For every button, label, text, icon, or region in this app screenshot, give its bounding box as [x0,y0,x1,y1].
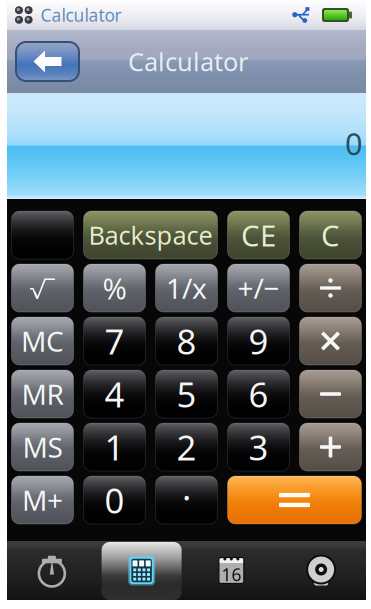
staticText: 0 [345,123,363,164]
button[interactable]: 2 [155,423,217,471]
staticText: 8 [176,318,196,364]
button[interactable]: Multiply [299,317,361,365]
button[interactable]: Equals [227,476,361,524]
button[interactable]: 6 [227,370,289,418]
button[interactable]: MS [11,423,73,471]
button[interactable]: Calendar [186,541,276,600]
staticText: M+ [22,481,63,519]
staticText: Backspace [88,218,212,252]
button[interactable]: Calculator [97,541,187,600]
button[interactable]: Plus [299,423,361,471]
button[interactable]: · [155,476,217,524]
button[interactable]: Camera [276,541,366,600]
button[interactable]: 1/x [155,264,217,312]
staticText: 5 [176,371,196,417]
staticText: +/− [237,269,279,307]
button[interactable]: C [299,211,361,259]
button[interactable]: M+ [11,476,73,524]
button[interactable]: % [83,264,145,312]
button[interactable] [11,211,73,259]
button[interactable]: 7 [83,317,145,365]
button[interactable]: Back [16,42,79,81]
button[interactable]: Start [11,2,37,28]
button[interactable]: CE [227,211,289,259]
staticText: 1 [104,424,124,470]
button[interactable]: 9 [227,317,289,365]
staticText: MC [21,322,64,360]
staticText: 16 [221,563,241,586]
button[interactable]: 4 [83,370,145,418]
button[interactable]: 8 [155,317,217,365]
button[interactable]: MR [11,370,73,418]
staticText: MS [22,428,62,466]
staticText: 7 [104,318,124,364]
staticText: 6 [248,371,268,417]
button[interactable]: +/− [227,264,289,312]
button[interactable]: Square root [11,264,73,312]
button[interactable]: Divide [299,264,361,312]
staticText: CE [241,215,276,254]
button[interactable]: 5 [155,370,217,418]
button[interactable]: Timer [7,541,97,600]
button[interactable]: MC [11,317,73,365]
staticText: C [321,215,340,254]
button[interactable]: Minus [299,370,361,418]
button[interactable]: Backspace [83,211,217,259]
button[interactable]: 0 [83,476,145,524]
staticText: 3 [248,424,268,470]
staticText: Calculator [41,3,122,26]
staticText: 0 [104,477,124,523]
staticText: 9 [248,318,268,364]
staticText: 1/x [166,269,207,307]
staticText: Calculator [128,45,248,78]
staticText: MR [21,375,63,413]
button[interactable]: 3 [227,423,289,471]
staticText: % [102,268,126,307]
staticText: 2 [176,424,196,470]
button[interactable]: 1 [83,423,145,471]
staticText: 4 [104,371,124,417]
staticText: · [182,474,191,520]
